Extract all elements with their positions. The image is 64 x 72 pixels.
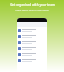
staticText: Get organised with your team bbox=[10, 3, 55, 7]
button[interactable] bbox=[17, 45, 47, 51]
button[interactable] bbox=[17, 51, 47, 57]
staticText: Keep every task in one place bbox=[15, 8, 49, 11]
button[interactable] bbox=[17, 27, 47, 33]
button[interactable] bbox=[17, 33, 47, 39]
button[interactable] bbox=[17, 57, 47, 63]
button[interactable] bbox=[17, 39, 47, 45]
